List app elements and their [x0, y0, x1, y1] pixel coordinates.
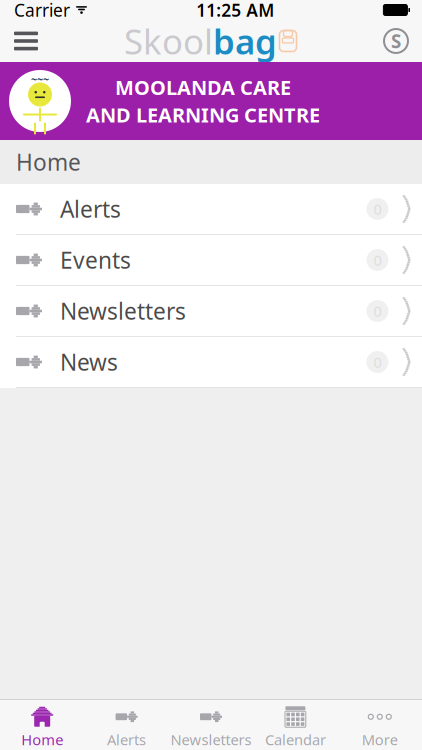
staticText: Skool: [124, 18, 213, 64]
staticText: Alerts: [60, 194, 121, 224]
staticText: Home: [16, 147, 81, 177]
staticText: Home: [21, 730, 63, 749]
staticText: Calendar: [265, 730, 326, 749]
staticText: AND LEARNING CENTRE: [86, 101, 320, 128]
staticText: S: [391, 29, 401, 53]
staticText: 0: [373, 250, 381, 270]
button[interactable]: More: [338, 700, 422, 750]
staticText: ~~~: [31, 72, 49, 86]
button[interactable]: Calendar: [253, 700, 338, 750]
button[interactable]: Menu: [0, 20, 52, 62]
staticText: 0: [373, 301, 381, 321]
staticText: MOOLANDA CARE: [115, 74, 291, 100]
staticText: Alerts: [107, 730, 146, 749]
button[interactable]: Home: [0, 700, 84, 750]
button[interactable]: News: [0, 337, 422, 388]
button[interactable]: Newsletters: [169, 700, 253, 750]
staticText: More: [362, 730, 398, 749]
staticText: 11:25 AM: [196, 0, 274, 21]
staticText: Carrier: [14, 0, 70, 21]
button[interactable]: Refresh: [370, 20, 422, 62]
staticText: Newsletters: [60, 296, 186, 326]
staticText: 0: [373, 199, 381, 219]
staticText: 0: [373, 352, 381, 372]
staticText: bag: [213, 18, 277, 64]
button[interactable]: Newsletters: [0, 286, 422, 337]
staticText: Newsletters: [170, 730, 251, 749]
button[interactable]: Alerts: [0, 184, 422, 235]
staticText: Events: [60, 245, 131, 275]
button[interactable]: Alerts: [84, 700, 169, 750]
button[interactable]: Events: [0, 235, 422, 286]
staticText: News: [60, 347, 118, 377]
